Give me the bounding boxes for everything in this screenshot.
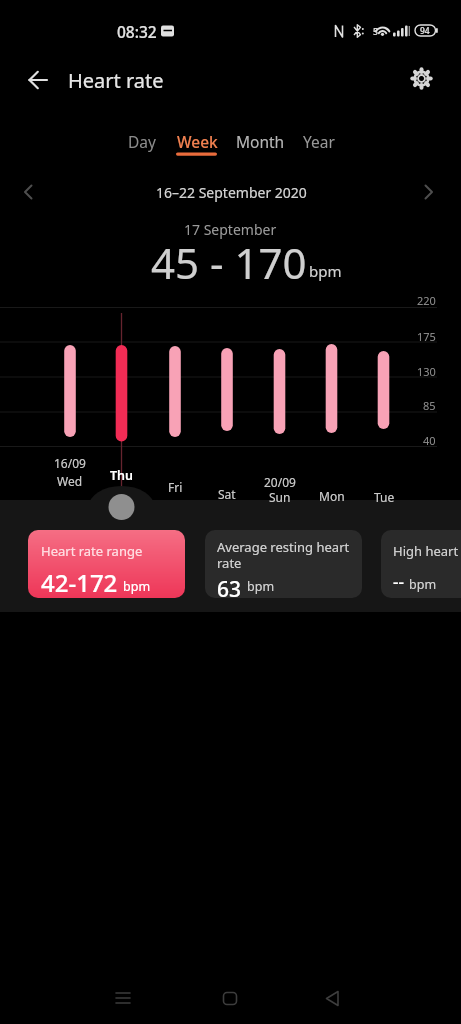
staticText: Sun (269, 489, 291, 505)
staticText: Fri (168, 479, 183, 495)
button[interactable]: Year (289, 123, 349, 159)
staticText: Heart rate (68, 67, 164, 94)
button[interactable]: High heart rate (381, 530, 461, 598)
staticText: Thu (110, 467, 134, 484)
staticText: Wed (57, 473, 83, 489)
staticText: bpm (309, 261, 342, 281)
staticText: bpm (247, 578, 275, 595)
staticText: Mon (319, 488, 345, 504)
staticText: 16/09 (54, 455, 86, 471)
staticText: High heart rate (393, 542, 461, 560)
button[interactable]: Average resting heart rate (205, 530, 362, 598)
staticText: Tue (374, 489, 395, 505)
button[interactable]: Week (165, 123, 229, 159)
staticText: 175 (417, 329, 436, 344)
staticText: Sat (218, 486, 236, 502)
staticText: -- (393, 570, 404, 593)
button[interactable] (12, 176, 44, 208)
button[interactable] (104, 980, 144, 1020)
staticText: 40 (423, 433, 436, 448)
staticText: 130 (417, 364, 436, 379)
staticText: 17 September (184, 220, 277, 239)
staticText: Year (303, 131, 335, 152)
button[interactable]: Month (226, 123, 294, 159)
button[interactable] (210, 980, 250, 1020)
staticText: 08:32 (117, 21, 157, 42)
button[interactable] (20, 62, 56, 98)
staticText: Day (128, 131, 156, 152)
staticText: bpm (123, 578, 151, 595)
button[interactable] (416, 176, 448, 208)
staticText: Heart rate range (41, 542, 143, 560)
staticText: Month (236, 131, 285, 152)
button[interactable]: Heart rate range (28, 530, 185, 598)
staticText: Average resting heart rate (217, 538, 357, 572)
button[interactable]: Day (112, 123, 172, 159)
staticText: bpm (409, 576, 437, 593)
button[interactable] (312, 980, 352, 1020)
staticText: 220 (417, 293, 436, 308)
staticText: 16–22 September 2020 (156, 183, 307, 202)
staticText: 42-172 (41, 566, 118, 598)
staticText: 94 (420, 25, 430, 37)
staticText: 20/09 (264, 474, 296, 490)
staticText: 85 (423, 398, 436, 413)
staticText: 45 - 170 (151, 234, 307, 291)
staticText: Week (177, 131, 218, 152)
staticText: 5 (373, 26, 378, 38)
staticText: 63 (217, 575, 242, 598)
button[interactable] (404, 61, 440, 97)
